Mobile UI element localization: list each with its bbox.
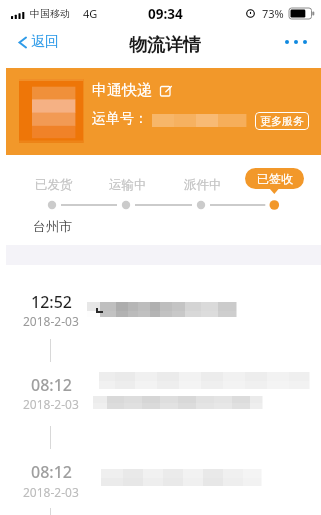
staticText: 12:52 <box>31 291 72 313</box>
button[interactable]: More options <box>271 32 321 52</box>
staticText: 台州市 <box>33 218 72 234</box>
staticText: 运输中 <box>109 177 147 193</box>
staticText: 09:34 <box>148 5 183 23</box>
staticText: 返回 <box>31 33 59 51</box>
staticText: 中国移动 <box>30 7 70 20</box>
button[interactable]: Open company page <box>160 85 172 97</box>
staticText: 08:12 <box>31 461 72 483</box>
staticText: 申通快递 <box>92 81 152 100</box>
staticText: 2018-2-03 <box>23 313 79 329</box>
staticText: 更多服务 <box>260 114 304 128</box>
staticText: 已签收 <box>257 171 293 186</box>
staticText: 已发货 <box>35 177 73 193</box>
staticText: 派件中 <box>184 177 222 193</box>
button[interactable]: 已签收 <box>245 168 304 189</box>
staticText: 4G <box>83 6 98 21</box>
staticText: 运单号： <box>92 110 148 128</box>
button[interactable]: 返回 <box>0 28 69 56</box>
staticText: 2018-2-03 <box>23 396 79 412</box>
staticText: 73% <box>262 6 284 21</box>
staticText: 物流详情 <box>129 34 201 57</box>
staticText: 2018-2-03 <box>23 484 79 500</box>
staticText: 08:12 <box>31 374 72 396</box>
button[interactable]: 更多服务 <box>255 112 309 130</box>
